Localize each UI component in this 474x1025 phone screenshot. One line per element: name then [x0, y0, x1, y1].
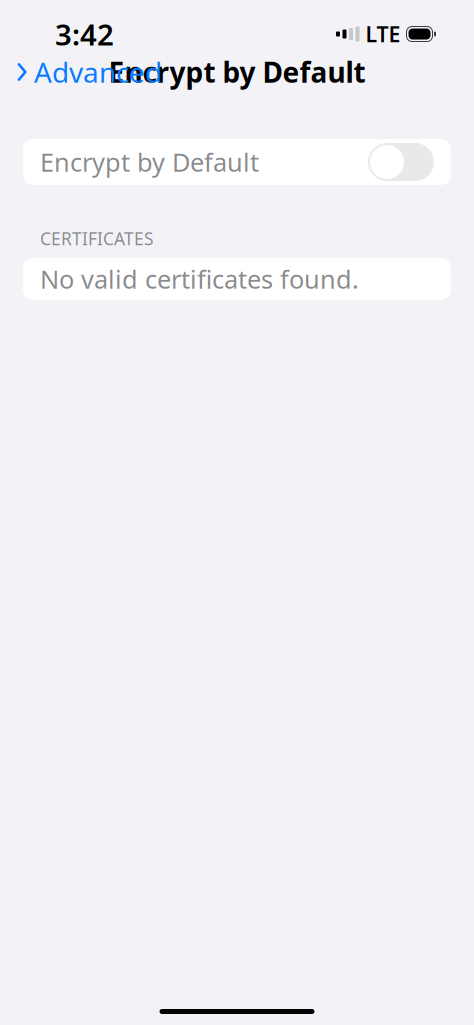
staticText: Encrypt by Default	[108, 53, 365, 91]
staticText: 3:42	[55, 14, 114, 53]
staticText: Advanced	[34, 53, 162, 91]
staticText: Encrypt by Default	[40, 145, 259, 179]
button[interactable]: Advanced	[4, 47, 174, 97]
staticText: LTE	[365, 20, 400, 48]
staticText: No valid certificates found.	[40, 262, 359, 296]
button[interactable]: Encrypt by Default	[23, 139, 451, 185]
staticText: CERTIFICATES	[40, 227, 154, 250]
